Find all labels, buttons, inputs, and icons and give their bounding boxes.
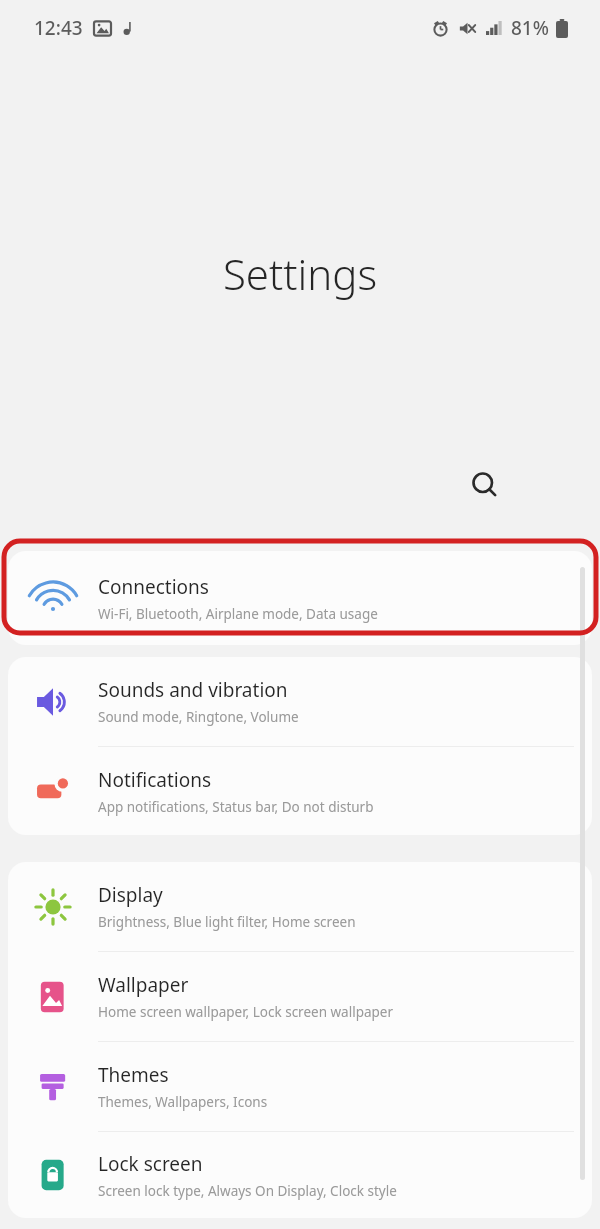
button[interactable]: Themes (8, 1042, 592, 1131)
button[interactable]: Sounds and vibration (8, 657, 592, 746)
button[interactable]: Lock screen (8, 1132, 592, 1218)
staticText: Settings (0, 245, 600, 302)
button[interactable]: Wallpaper (8, 952, 592, 1041)
staticText: Screen lock type, Always On Display, Clo… (98, 1182, 397, 1200)
staticText: Sound mode, Ringtone, Volume (98, 708, 299, 726)
button[interactable]: Notifications (8, 747, 592, 835)
staticText: Notifications (98, 767, 212, 793)
staticText: Sounds and vibration (98, 677, 288, 703)
staticText: Home screen wallpaper, Lock screen wallp… (98, 1003, 394, 1021)
staticText: 12:43 (34, 15, 83, 41)
staticText: Themes, Wallpapers, Icons (98, 1093, 268, 1111)
button[interactable]: Display (8, 862, 592, 951)
staticText: App notifications, Status bar, Do not di… (98, 798, 374, 816)
staticText: Themes (98, 1062, 169, 1088)
staticText: 81% (511, 15, 549, 41)
staticText: Wi-Fi, Bluetooth, Airplane mode, Data us… (98, 605, 378, 623)
staticText: Display (98, 882, 163, 908)
staticText: Connections (98, 574, 209, 600)
staticText: Lock screen (98, 1151, 203, 1177)
button[interactable]: Connections (8, 551, 592, 645)
staticText: Brightness, Blue light filter, Home scre… (98, 913, 356, 931)
staticText: Wallpaper (98, 972, 189, 998)
button[interactable]: Search (458, 458, 512, 512)
